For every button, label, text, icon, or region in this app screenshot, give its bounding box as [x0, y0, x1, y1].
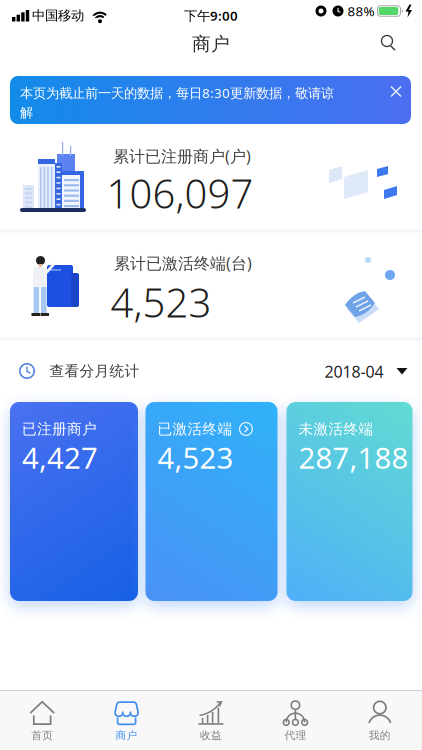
staticText: 累计已注册商户(户) — [113, 145, 251, 167]
button[interactable]: 首页 — [2, 693, 82, 749]
button[interactable]: 2018-04 — [324, 361, 407, 382]
button[interactable]: 代理 — [255, 693, 335, 749]
staticText: 查看分月统计 — [49, 362, 139, 380]
staticText: 4,523 — [157, 438, 233, 477]
button[interactable]: 收益 — [171, 693, 251, 749]
staticText: 未激活终端 — [298, 420, 373, 438]
staticText: 2018-04 — [324, 361, 383, 382]
staticText: 下午9:00 — [184, 7, 238, 24]
staticText: 4,523 — [110, 275, 211, 328]
staticText: 已激活终端 — [157, 420, 232, 438]
staticText: 我的 — [369, 729, 391, 742]
staticText: 106,097 — [106, 166, 253, 219]
staticText: 本页为截止前一天的数据，每日8:30更新数据，敬请谅 — [20, 84, 334, 102]
button[interactable]: 查看分月统计 — [18, 362, 139, 380]
staticText: 4,427 — [22, 438, 98, 477]
staticText: 中国移动 — [32, 7, 84, 24]
staticText: 解 — [20, 105, 33, 121]
staticText: 收益 — [200, 729, 222, 742]
staticText: 商户 — [192, 32, 230, 55]
staticText: 代理 — [284, 729, 306, 742]
staticText: 累计已激活终端(台) — [114, 252, 252, 274]
button[interactable]: Search — [377, 32, 405, 58]
staticText: 已注册商户 — [22, 420, 97, 438]
staticText: 88% — [347, 2, 374, 20]
button[interactable]: 商户 — [87, 693, 167, 749]
staticText: 首页 — [31, 729, 53, 742]
staticText: 287,188 — [298, 438, 408, 477]
button[interactable]: 已激活终端 — [145, 402, 277, 601]
button[interactable]: Close — [383, 78, 409, 104]
button[interactable]: 我的 — [340, 693, 420, 749]
button[interactable]: 未激活终端 — [286, 402, 412, 601]
button[interactable]: 已注册商户 — [10, 402, 138, 601]
staticText: 商户 — [116, 729, 138, 742]
